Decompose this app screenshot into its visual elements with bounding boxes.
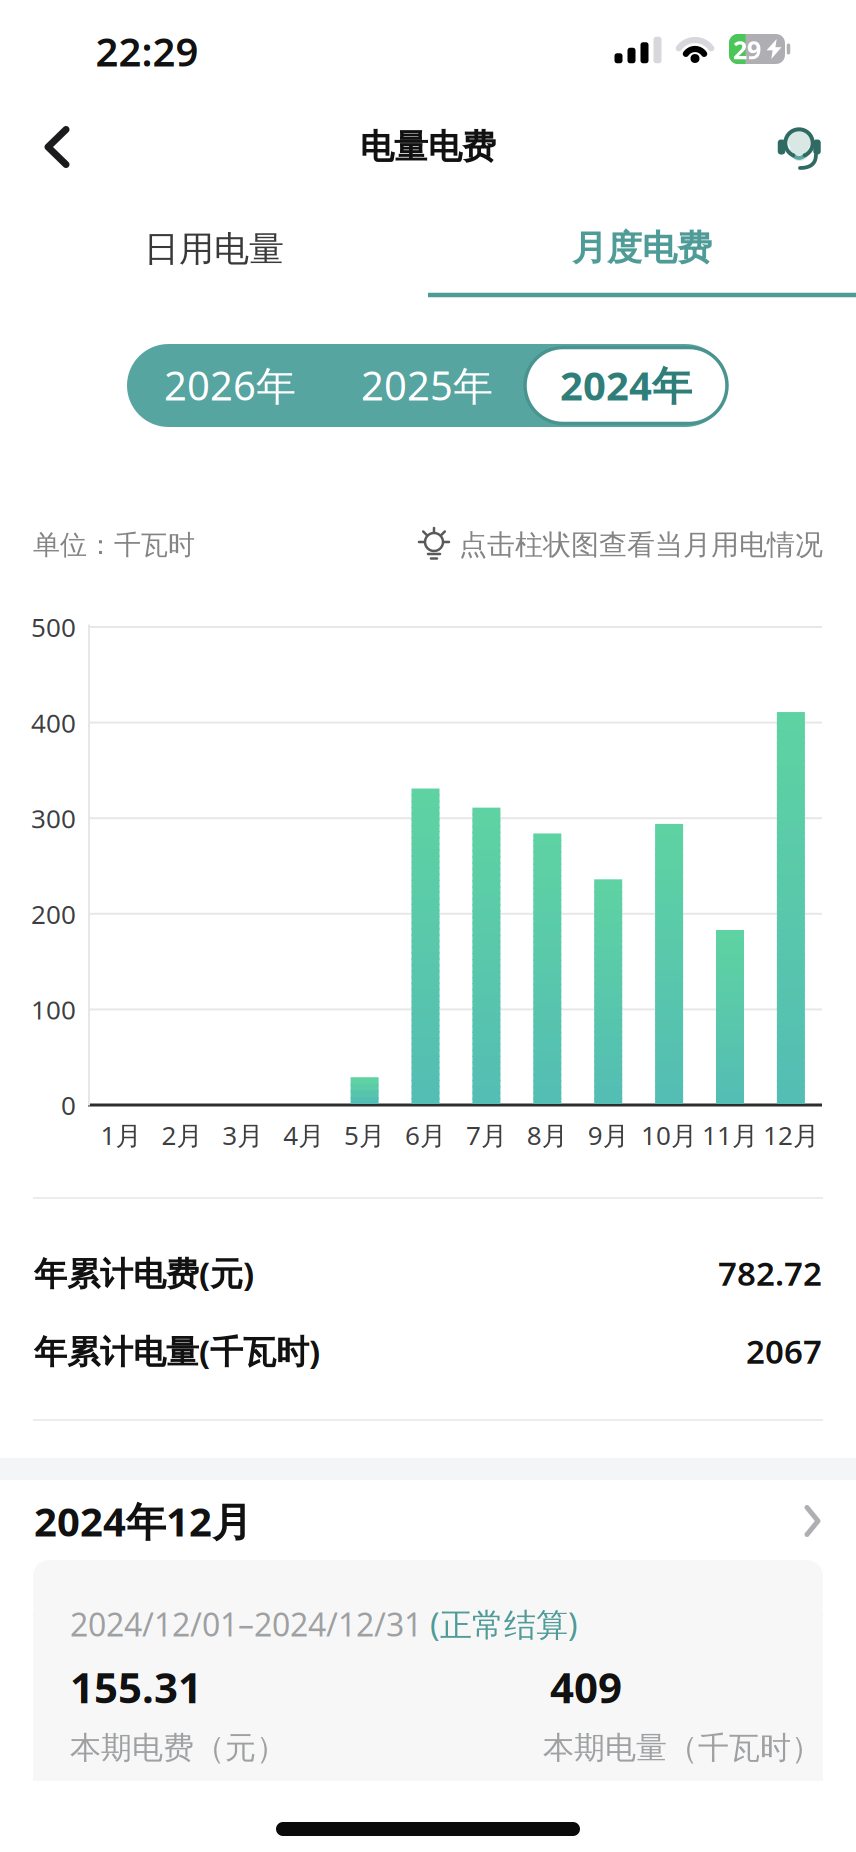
staticText: 日用电量 <box>144 227 284 270</box>
staticText: 月度电费 <box>572 226 712 269</box>
staticText: 100 <box>31 992 76 1027</box>
staticText: 年累计电费(元) <box>34 1251 254 1295</box>
staticText: 本期电费（元） <box>70 1729 287 1767</box>
staticText: 年累计电量(千瓦时) <box>34 1329 320 1373</box>
staticText: 12月 <box>763 1118 819 1152</box>
staticText: 4月 <box>283 1118 324 1152</box>
staticText: (正常结算) <box>430 1603 578 1645</box>
staticText: 9月 <box>588 1118 629 1152</box>
staticText: 2024年12月 <box>34 1494 252 1547</box>
staticText: 0 <box>61 1088 76 1122</box>
staticText: 2025年 <box>361 358 493 411</box>
staticText: 1月 <box>100 1118 141 1152</box>
staticText: 300 <box>31 801 76 835</box>
staticText: 本期电量（千瓦时） <box>543 1729 822 1767</box>
staticText: 200 <box>31 896 76 931</box>
staticText: 2024年 <box>560 358 692 411</box>
staticText: 8月 <box>527 1118 568 1152</box>
staticText: 7月 <box>466 1118 507 1152</box>
staticText: 155.31 <box>70 1659 202 1715</box>
staticText: 10月 <box>641 1118 697 1152</box>
staticText: 5月 <box>344 1118 385 1152</box>
staticText: 6月 <box>405 1118 446 1152</box>
staticText: 2067 <box>746 1329 822 1373</box>
staticText: 22:29 <box>95 24 198 77</box>
staticText: 2024/12/01–2024/12/31 <box>70 1603 430 1645</box>
staticText: 2月 <box>161 1118 202 1152</box>
staticText: 782.72 <box>718 1251 822 1295</box>
staticText: 2026年 <box>164 358 296 411</box>
staticText: 11月 <box>702 1118 758 1152</box>
staticText: 单位：千瓦时 <box>33 528 195 562</box>
staticText: 3月 <box>222 1118 263 1152</box>
staticText: 点击柱状图查看当月用电情况 <box>459 528 823 562</box>
staticText: 29 <box>733 33 761 66</box>
staticText: 400 <box>31 705 76 740</box>
staticText: 500 <box>31 610 76 644</box>
staticText: 409 <box>550 1659 622 1715</box>
staticText: 电量电费 <box>360 126 496 168</box>
